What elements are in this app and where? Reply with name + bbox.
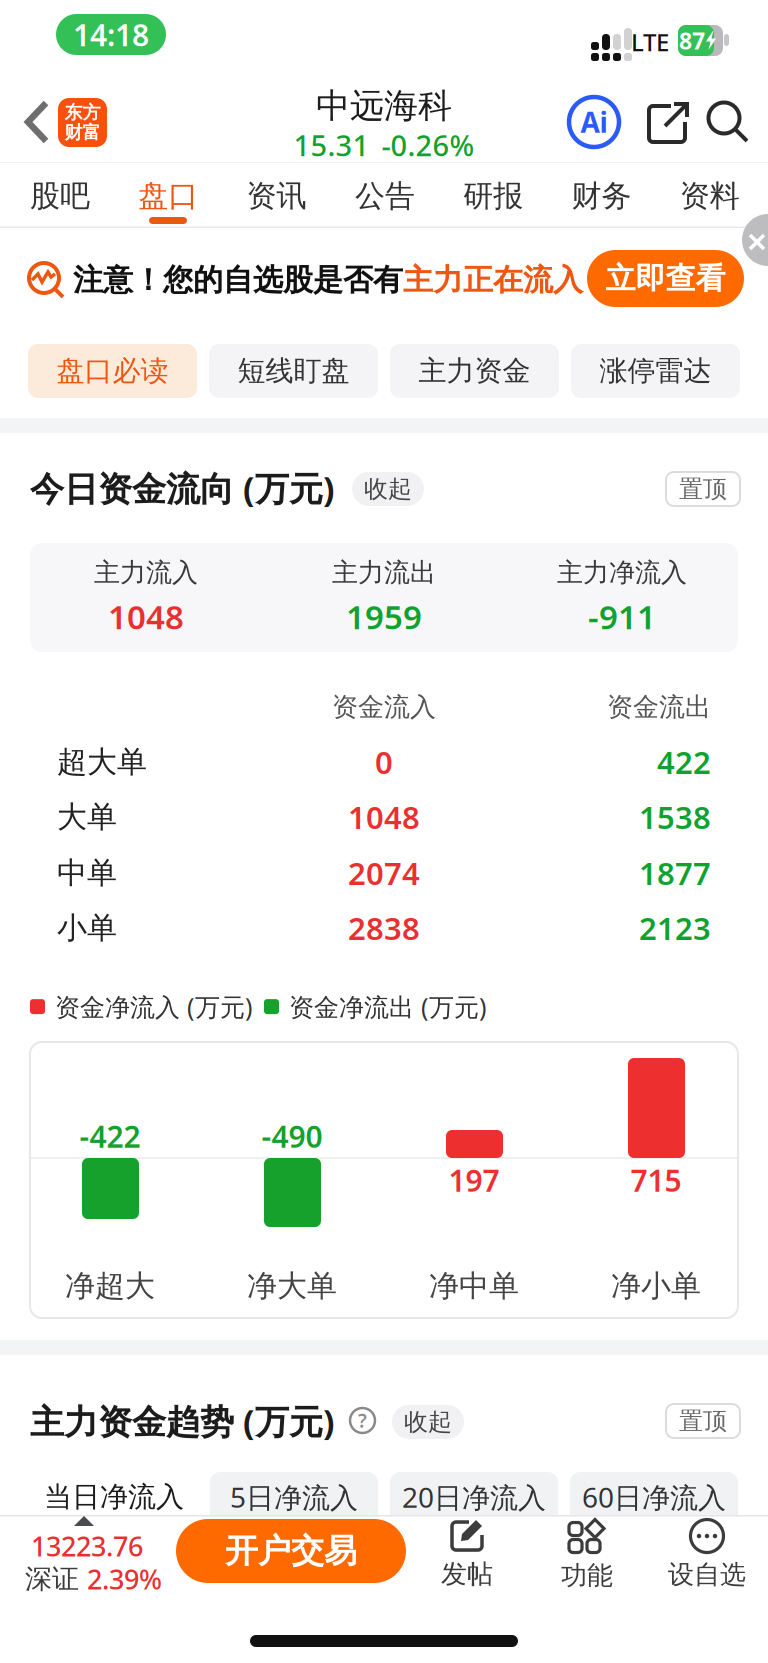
button[interactable]: 当日净流入 xyxy=(30,1472,198,1532)
button[interactable]: 公告 xyxy=(353,176,417,216)
staticText: 财富 xyxy=(64,121,100,144)
staticText: 2838 xyxy=(348,907,420,949)
button[interactable]: 收起 xyxy=(352,472,424,506)
staticText: 15.31 xyxy=(293,126,369,164)
staticText: 盘口 xyxy=(138,178,198,214)
button[interactable]: 收起 xyxy=(392,1405,464,1439)
staticText: 今日资金流向 (万元) xyxy=(30,465,335,511)
staticText: 资金流入 xyxy=(332,691,436,723)
staticText: 发帖 xyxy=(441,1558,493,1590)
staticText: 0 xyxy=(375,741,393,783)
button[interactable]: 资讯 xyxy=(245,176,309,216)
staticText: 公告 xyxy=(355,178,415,214)
staticText: 收起 xyxy=(404,1407,452,1437)
staticText: 60日净流入 xyxy=(582,1478,726,1516)
staticText: 5日净流入 xyxy=(230,1478,358,1516)
staticText: -422 xyxy=(79,1116,140,1156)
staticText: 东方 xyxy=(64,101,100,123)
staticText: 主力资金趋势 (万元) xyxy=(30,1398,335,1444)
staticText: 收起 xyxy=(364,474,412,504)
button[interactable]: 立即查看 xyxy=(587,250,744,307)
staticText: LTE xyxy=(631,26,669,58)
button[interactable]: 研报 xyxy=(461,176,525,216)
staticText: 资金净流出 (万元) xyxy=(289,990,487,1023)
staticText: 置顶 xyxy=(679,474,727,504)
staticText: 87 xyxy=(679,25,705,56)
button[interactable]: 14:18 xyxy=(56,14,166,55)
staticText: 大单 xyxy=(57,799,117,835)
staticText: 715 xyxy=(630,1160,681,1200)
staticText: 主力正在流入 xyxy=(403,262,583,298)
staticText: 2123 xyxy=(639,907,711,949)
button[interactable]: 60日净流入 xyxy=(570,1472,738,1532)
staticText: 短线盯盘 xyxy=(237,354,349,388)
staticText: -490 xyxy=(261,1116,322,1156)
button[interactable]: 置顶 xyxy=(666,472,740,506)
button[interactable]: 东方 xyxy=(58,98,107,147)
button[interactable] xyxy=(742,214,768,266)
button[interactable]: 13223.76 xyxy=(25,1529,181,1599)
staticText: 主力流出 xyxy=(332,557,436,588)
button[interactable]: 主力资金 xyxy=(390,344,559,398)
staticText: 净大单 xyxy=(247,1268,337,1304)
button[interactable]: 功能 xyxy=(532,1519,642,1591)
staticText: 主力净流入 xyxy=(557,557,687,588)
staticText: 资讯 xyxy=(247,178,307,214)
staticText: 净超大 xyxy=(65,1268,155,1304)
staticText: 14:18 xyxy=(73,15,149,54)
button[interactable]: 盘口 xyxy=(136,176,200,216)
button[interactable]: 短线盯盘 xyxy=(209,344,378,398)
button[interactable]: 股吧 xyxy=(28,176,92,216)
button[interactable]: Ai xyxy=(568,96,620,148)
staticText: 盘口必读 xyxy=(56,354,168,388)
staticText: 422 xyxy=(657,741,711,783)
staticText: 中单 xyxy=(57,855,117,891)
staticText: 中远海科 xyxy=(316,85,452,127)
button[interactable]: 置顶 xyxy=(666,1404,740,1438)
staticText: 立即查看 xyxy=(605,260,725,297)
staticText: 1959 xyxy=(346,595,422,638)
staticText: -0.26% xyxy=(381,126,474,164)
staticText: 置顶 xyxy=(679,1406,727,1436)
staticText: 财务 xyxy=(571,178,631,214)
button[interactable]: 开户交易 xyxy=(176,1519,406,1583)
staticText: 深证 xyxy=(25,1562,79,1595)
staticText: 资料 xyxy=(680,178,740,214)
button[interactable]: 5日净流入 xyxy=(210,1472,378,1532)
staticText: 注意！您的自选股是否有 xyxy=(73,262,403,298)
staticText: 功能 xyxy=(561,1559,613,1591)
staticText: 涨停雷达 xyxy=(599,354,711,388)
staticText: -911 xyxy=(588,595,656,638)
button[interactable]: 注意！您的自选股是否有 xyxy=(26,260,583,300)
staticText: 197 xyxy=(448,1160,499,1200)
button[interactable] xyxy=(705,99,751,145)
button[interactable]: 涨停雷达 xyxy=(571,344,740,398)
staticText: 资金净流入 (万元) xyxy=(55,990,253,1023)
staticText: 2.39% xyxy=(87,1561,162,1597)
staticText: 设自选 xyxy=(668,1558,746,1590)
staticText: 20日净流入 xyxy=(402,1478,546,1516)
button[interactable]: 设自选 xyxy=(652,1519,762,1591)
staticText: 股吧 xyxy=(30,178,90,214)
staticText: 1048 xyxy=(348,796,420,838)
button[interactable]: 财务 xyxy=(569,176,633,216)
staticText: 1538 xyxy=(639,796,711,838)
staticText: 1877 xyxy=(639,852,711,894)
staticText: 13223.76 xyxy=(31,1528,143,1564)
staticText: 超大单 xyxy=(57,744,147,780)
staticText: 净小单 xyxy=(611,1268,701,1304)
staticText: 开户交易 xyxy=(225,1531,357,1571)
staticText: Ai xyxy=(580,103,607,141)
button[interactable]: 发帖 xyxy=(412,1519,522,1591)
button[interactable]: 20日净流入 xyxy=(390,1472,558,1532)
button[interactable]: 资料 xyxy=(678,176,742,216)
staticText: 资金流出 xyxy=(607,691,711,723)
staticText: ? xyxy=(358,1408,367,1433)
staticText: 2074 xyxy=(348,852,420,894)
staticText: 研报 xyxy=(463,178,523,214)
staticText: 主力流入 xyxy=(94,557,198,588)
button[interactable] xyxy=(24,100,50,144)
button[interactable] xyxy=(643,100,689,146)
staticText: 净中单 xyxy=(429,1268,519,1304)
button[interactable]: 盘口必读 xyxy=(28,344,197,398)
